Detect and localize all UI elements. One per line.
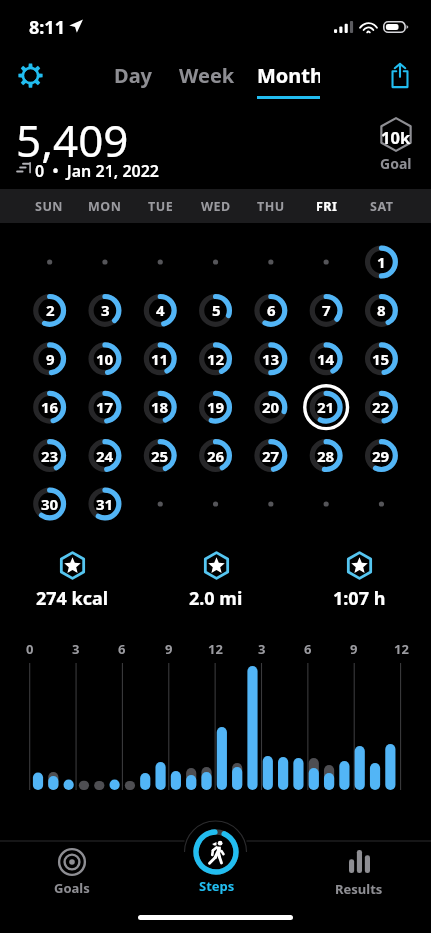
button[interactable]: 4 [140, 290, 180, 330]
button[interactable]: 10 [85, 339, 125, 379]
staticText: 16 [41, 397, 59, 417]
button[interactable]: 22 [361, 387, 401, 427]
staticText: 22 [372, 397, 390, 417]
staticText: 27 [262, 446, 280, 466]
button[interactable]: 16 [30, 387, 70, 427]
button[interactable]: 13 [251, 339, 291, 379]
staticText: TUE [148, 198, 174, 215]
button[interactable]: 18 [140, 387, 180, 427]
staticText: 6 [267, 300, 276, 320]
staticText: Goal [380, 154, 412, 173]
staticText: 1 [377, 252, 386, 272]
staticText: 25 [151, 446, 169, 466]
staticText: 4 [156, 300, 165, 320]
staticText: 23 [41, 446, 59, 466]
staticText: 24 [96, 446, 114, 466]
staticText: 11 [151, 349, 169, 369]
button[interactable]: 31 [85, 484, 125, 524]
staticText: 5,409 [16, 110, 129, 170]
staticText: 12 [394, 640, 409, 658]
button[interactable]: 1 [361, 242, 401, 282]
button[interactable]: 30 [30, 484, 70, 524]
staticText: 10 [96, 349, 114, 369]
staticText: 2.0 mi [189, 586, 243, 611]
button[interactable]: Goals [12, 845, 132, 900]
button[interactable]: 26 [196, 436, 236, 476]
button[interactable]: 12 [196, 339, 236, 379]
staticText: 30 [41, 494, 59, 514]
button[interactable]: 27 [251, 436, 291, 476]
staticText: 12 [207, 349, 225, 369]
staticText: 29 [372, 446, 390, 466]
staticText: 20 [262, 397, 280, 417]
staticText: 3 [258, 640, 266, 658]
button[interactable]: 20 [251, 387, 291, 427]
button[interactable]: 21 [306, 387, 346, 427]
button[interactable]: Month [257, 62, 320, 104]
staticText: FRI [316, 198, 338, 215]
staticText: 9 [165, 640, 173, 658]
staticText: MON [88, 198, 122, 215]
staticText: 26 [207, 446, 225, 466]
staticText: 8:11 [29, 15, 65, 40]
staticText: 9 [46, 349, 55, 369]
button[interactable]: 6 [251, 290, 291, 330]
staticText: Month [257, 62, 320, 89]
button[interactable]: 23 [30, 436, 70, 476]
staticText: Goals [54, 879, 90, 897]
staticText: 0 • Jan 21, 2022 [35, 160, 160, 182]
button[interactable]: 3 [85, 290, 125, 330]
button[interactable]: Day [104, 62, 162, 104]
staticText: Day [114, 62, 153, 89]
staticText: 17 [96, 397, 114, 417]
staticText: Results [335, 880, 383, 898]
button[interactable]: 24 [85, 436, 125, 476]
staticText: 3 [101, 300, 110, 320]
button[interactable]: 11 [140, 339, 180, 379]
staticText: 8 [377, 300, 386, 320]
button[interactable]: 15 [361, 339, 401, 379]
staticText: Steps [199, 877, 235, 895]
staticText: 15 [372, 349, 390, 369]
button[interactable]: Week [174, 62, 240, 104]
button[interactable]: 2.0 mi [156, 551, 276, 611]
button[interactable]: Results [299, 845, 419, 900]
staticText: Week [179, 62, 235, 89]
staticText: 31 [96, 494, 114, 514]
button[interactable]: Share [380, 55, 420, 95]
button[interactable]: 274 kcal [12, 551, 132, 611]
staticText: 5 [212, 300, 221, 320]
button[interactable]: 1:07 h [299, 551, 419, 611]
button[interactable]: Settings [10, 55, 51, 96]
staticText: THU [257, 198, 285, 215]
staticText: 0 [26, 640, 34, 658]
button[interactable]: 7 [306, 290, 346, 330]
staticText: 6 [118, 640, 126, 658]
staticText: SUN [35, 198, 64, 215]
button[interactable]: 29 [361, 436, 401, 476]
staticText: 21 [317, 397, 335, 417]
button[interactable]: 2 [30, 290, 70, 330]
button[interactable]: 5 [196, 290, 236, 330]
staticText: SAT [370, 198, 394, 215]
button[interactable]: 17 [85, 387, 125, 427]
staticText: 10k [381, 126, 411, 148]
staticText: 14 [317, 349, 335, 369]
staticText: 274 kcal [36, 586, 109, 611]
staticText: 6 [304, 640, 312, 658]
staticText: 1:07 h [333, 586, 386, 611]
button[interactable]: 19 [196, 387, 236, 427]
staticText: 28 [317, 446, 335, 466]
staticText: 19 [207, 397, 225, 417]
staticText: 7 [322, 300, 331, 320]
button[interactable]: 14 [306, 339, 346, 379]
staticText: 13 [262, 349, 280, 369]
button[interactable]: 8 [361, 290, 401, 330]
staticText: 9 [350, 640, 358, 658]
button[interactable]: Steps [155, 829, 275, 899]
staticText: 12 [208, 640, 223, 658]
staticText: 18 [151, 397, 169, 417]
button[interactable]: 25 [140, 436, 180, 476]
button[interactable]: 28 [306, 436, 346, 476]
button[interactable]: 9 [30, 339, 70, 379]
